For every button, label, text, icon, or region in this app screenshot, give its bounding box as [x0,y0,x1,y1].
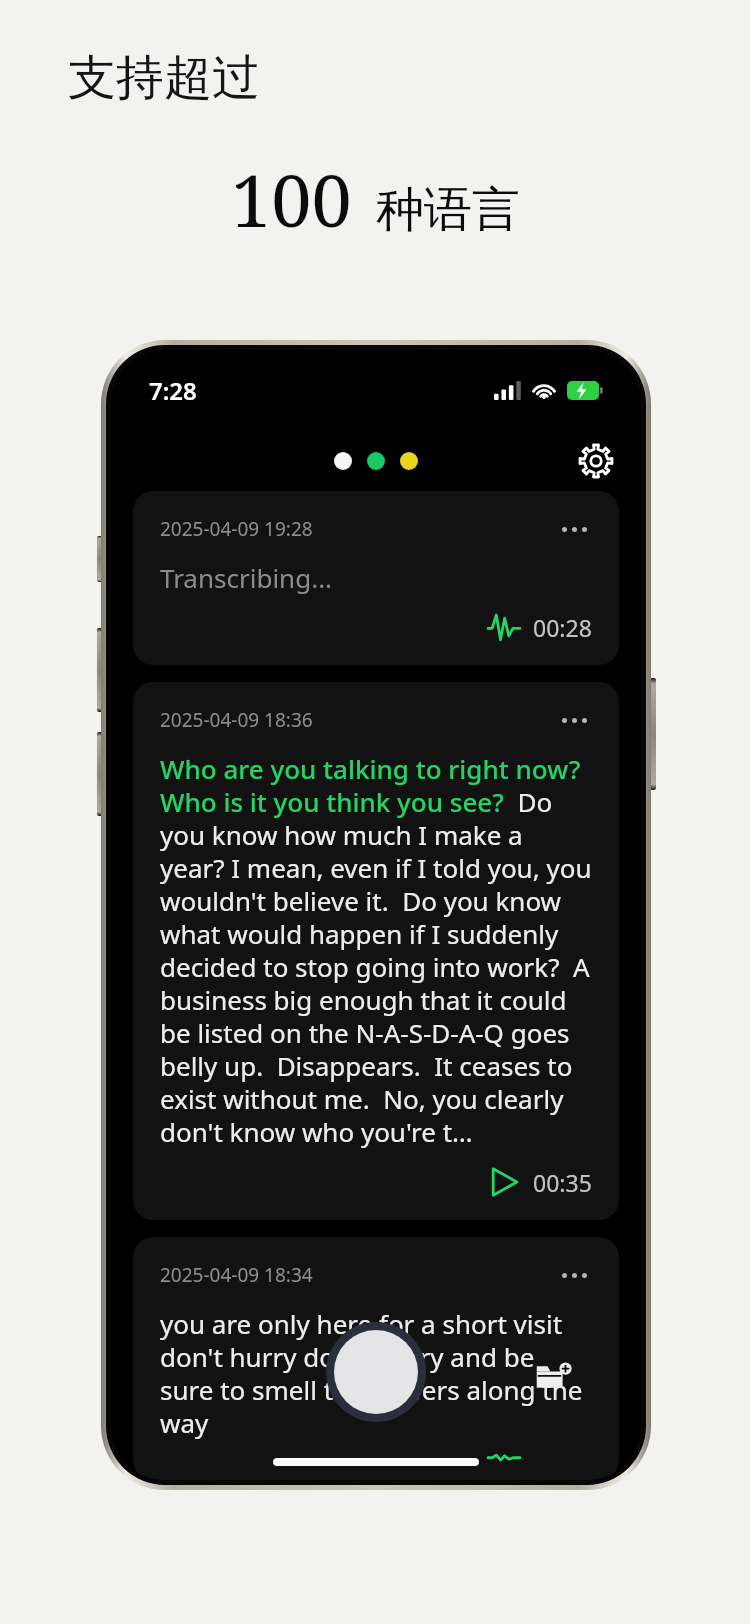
button[interactable]: Filter [400,452,418,470]
button[interactable]: New folder [531,1354,577,1400]
button[interactable]: Play [486,1164,522,1200]
button[interactable]: More options [556,511,592,547]
button[interactable]: More options [556,1257,592,1293]
button[interactable]: 2025-04-09 18:34 [133,1237,619,1480]
button[interactable]: More options [556,702,592,738]
button[interactable]: 2025-04-09 18:36 [133,682,619,1220]
button[interactable]: Filter [334,452,352,470]
staticText: 2025-04-09 18:34 [160,1262,313,1288]
button[interactable]: 2025-04-09 19:28 [133,491,619,665]
button[interactable]: Waveform [486,1455,522,1460]
staticText: 2025-04-09 18:36 [160,707,313,733]
staticText: 种语言 [376,180,520,240]
button[interactable]: Waveform [486,609,522,645]
button[interactable]: Record [326,1322,426,1422]
staticText: 2025-04-09 19:28 [160,516,313,542]
button[interactable]: Settings [573,438,619,484]
staticText: 00:35 [533,1167,592,1198]
staticText: 7:28 [149,374,197,407]
staticText: 支持超过 [68,48,260,108]
staticText: Transcribing... [160,560,333,595]
staticText: 00:28 [533,612,592,643]
button[interactable]: Filter [367,452,385,470]
staticText: Who are you talking to right now? Who is… [160,751,592,1150]
staticText: you are only here for a short visit don'… [160,1306,592,1441]
staticText: 100 [231,150,352,248]
